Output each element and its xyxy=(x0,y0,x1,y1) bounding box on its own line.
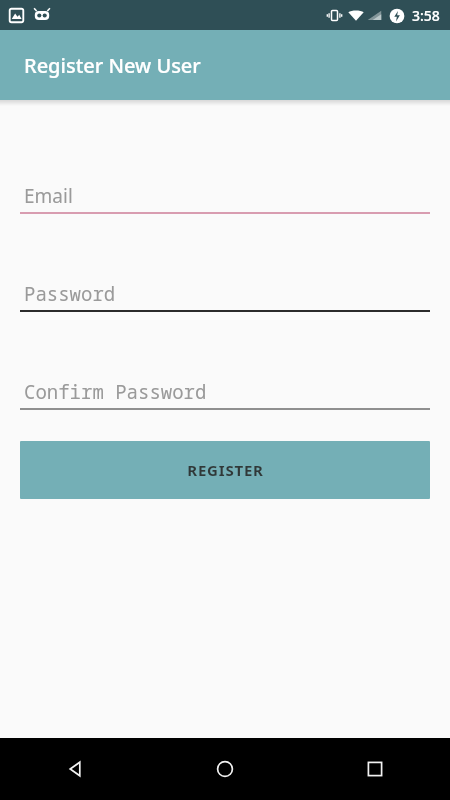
staticText: 3:58 xyxy=(412,6,440,25)
staticText: Confirm Password xyxy=(24,379,207,405)
staticText: Password xyxy=(24,281,116,307)
button[interactable]: Back xyxy=(0,738,150,800)
staticText: REGISTER xyxy=(187,460,264,480)
button[interactable]: Email xyxy=(20,180,430,214)
button[interactable]: REGISTER xyxy=(20,441,430,499)
button[interactable]: Home xyxy=(150,738,300,800)
button[interactable]: Password xyxy=(20,278,430,312)
button[interactable]: Recents xyxy=(300,738,450,800)
button[interactable]: Confirm Password xyxy=(20,376,430,410)
staticText: Email xyxy=(24,183,73,209)
staticText: Register New User xyxy=(24,52,201,79)
